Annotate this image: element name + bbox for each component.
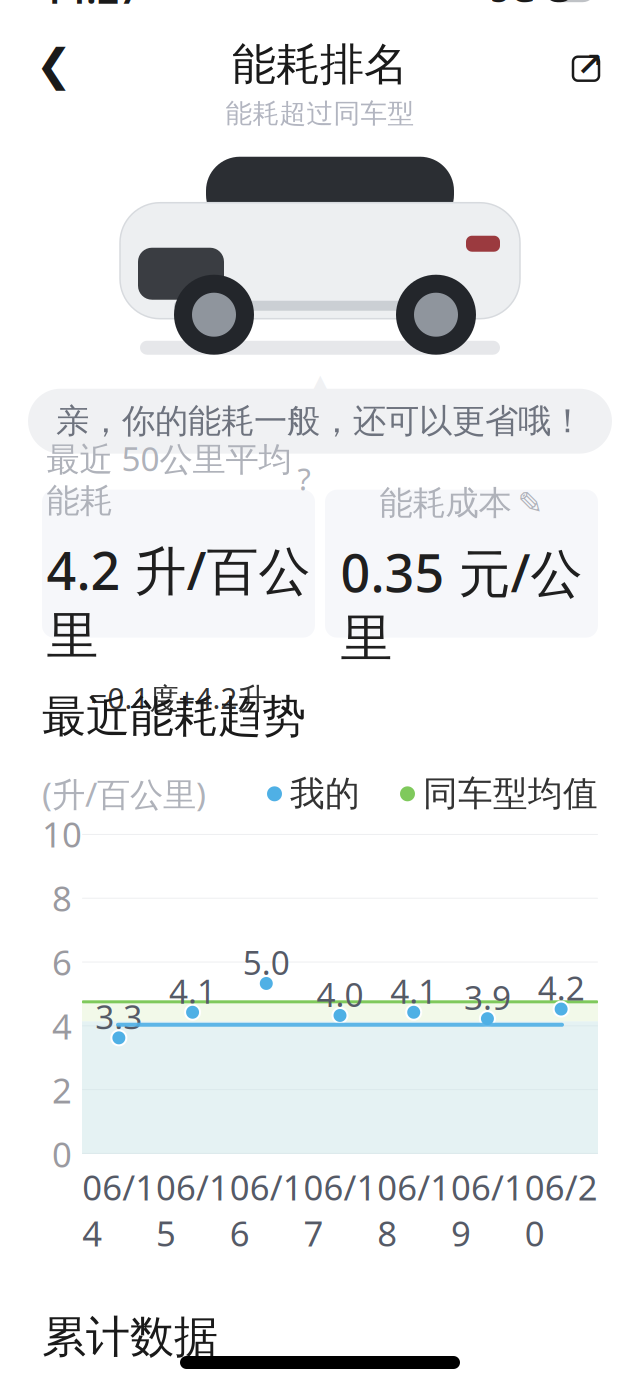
staticText: 2 — [52, 1067, 72, 1113]
staticText: =0.1度+4.2升 — [90, 678, 266, 717]
staticText: 06/19 — [451, 1164, 524, 1256]
staticText: 3.3 — [95, 994, 142, 1038]
staticText: 4.0 — [316, 972, 363, 1016]
staticText: 53 — [545, 0, 573, 5]
staticText: 我的 — [290, 772, 360, 815]
staticText: ▲ — [311, 369, 329, 396]
staticText: 10 — [42, 811, 82, 857]
staticText: 3.9 — [464, 975, 511, 1019]
staticText: 06/14 — [82, 1164, 155, 1256]
staticText: 最近 50公里平均能耗 — [46, 436, 291, 521]
staticText: 14:27 — [42, 0, 141, 14]
staticText: 5.0 — [243, 940, 290, 984]
staticText: 06/15 — [156, 1164, 229, 1256]
staticText: 0.35 元/公里 — [340, 538, 582, 671]
staticText: 累计数据 — [42, 1310, 218, 1364]
staticText: 亲，你的能耗一般，还可以更省哦！ — [56, 401, 584, 442]
staticText: 06/17 — [303, 1164, 376, 1256]
staticText: 4.2 升/百公里 — [46, 535, 310, 668]
staticText: 4 — [52, 1003, 72, 1049]
staticText: 4.2 — [538, 965, 585, 1010]
staticText: 0 — [52, 1131, 72, 1177]
staticText: 4.1 — [169, 969, 216, 1013]
staticText: (升/百公里) — [42, 772, 206, 816]
staticText: 8 — [52, 875, 72, 921]
staticText: 6 — [52, 939, 72, 985]
staticText: 同车型均值 — [423, 772, 598, 815]
button[interactable]: Share — [556, 35, 616, 95]
staticText: 能耗成本 — [379, 483, 511, 524]
staticText: 06/20 — [525, 1164, 598, 1256]
staticText: ❮ — [35, 40, 72, 90]
staticText: 最近能耗趋势 — [42, 690, 306, 744]
staticText: 06/18 — [377, 1164, 450, 1256]
staticText: ↗ — [576, 46, 603, 83]
staticText: 06/16 — [230, 1164, 303, 1256]
staticText: 能耗超过同车型 — [225, 97, 414, 130]
button[interactable]: Back — [24, 35, 84, 95]
staticText: ? — [297, 458, 310, 499]
staticText: 能耗排名 — [232, 38, 408, 92]
staticText: 4.1 — [390, 969, 437, 1013]
staticText: ✎ — [517, 486, 543, 521]
staticText: 5G — [490, 0, 535, 12]
